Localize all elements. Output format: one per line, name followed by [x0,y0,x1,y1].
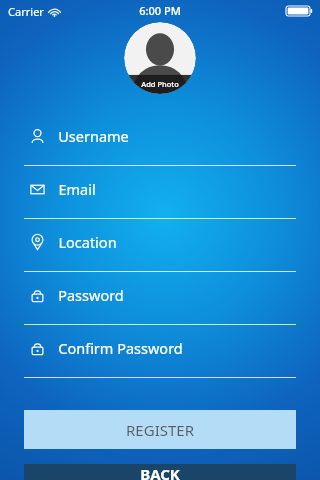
button[interactable]: REGISTER [24,410,296,449]
button[interactable]: Confirm Password [0,330,320,383]
staticText: Confirm Password [58,338,183,358]
staticText: BACK [140,464,180,480]
staticText: Carrier [8,4,44,19]
staticText: Username [58,126,129,146]
staticText: Add Photo [141,79,179,89]
button[interactable]: BACK [24,464,296,480]
staticText: Password [58,285,124,305]
button[interactable]: Email [0,171,320,224]
button[interactable]: Username [0,118,320,171]
staticText: REGISTER [126,420,194,440]
button[interactable]: Add Photo [124,22,196,94]
staticText: 6:00 PM [139,3,181,18]
staticText: Location [58,232,117,252]
button[interactable]: Password [0,277,320,330]
staticText: Email [58,179,96,199]
button[interactable]: Location [0,224,320,277]
